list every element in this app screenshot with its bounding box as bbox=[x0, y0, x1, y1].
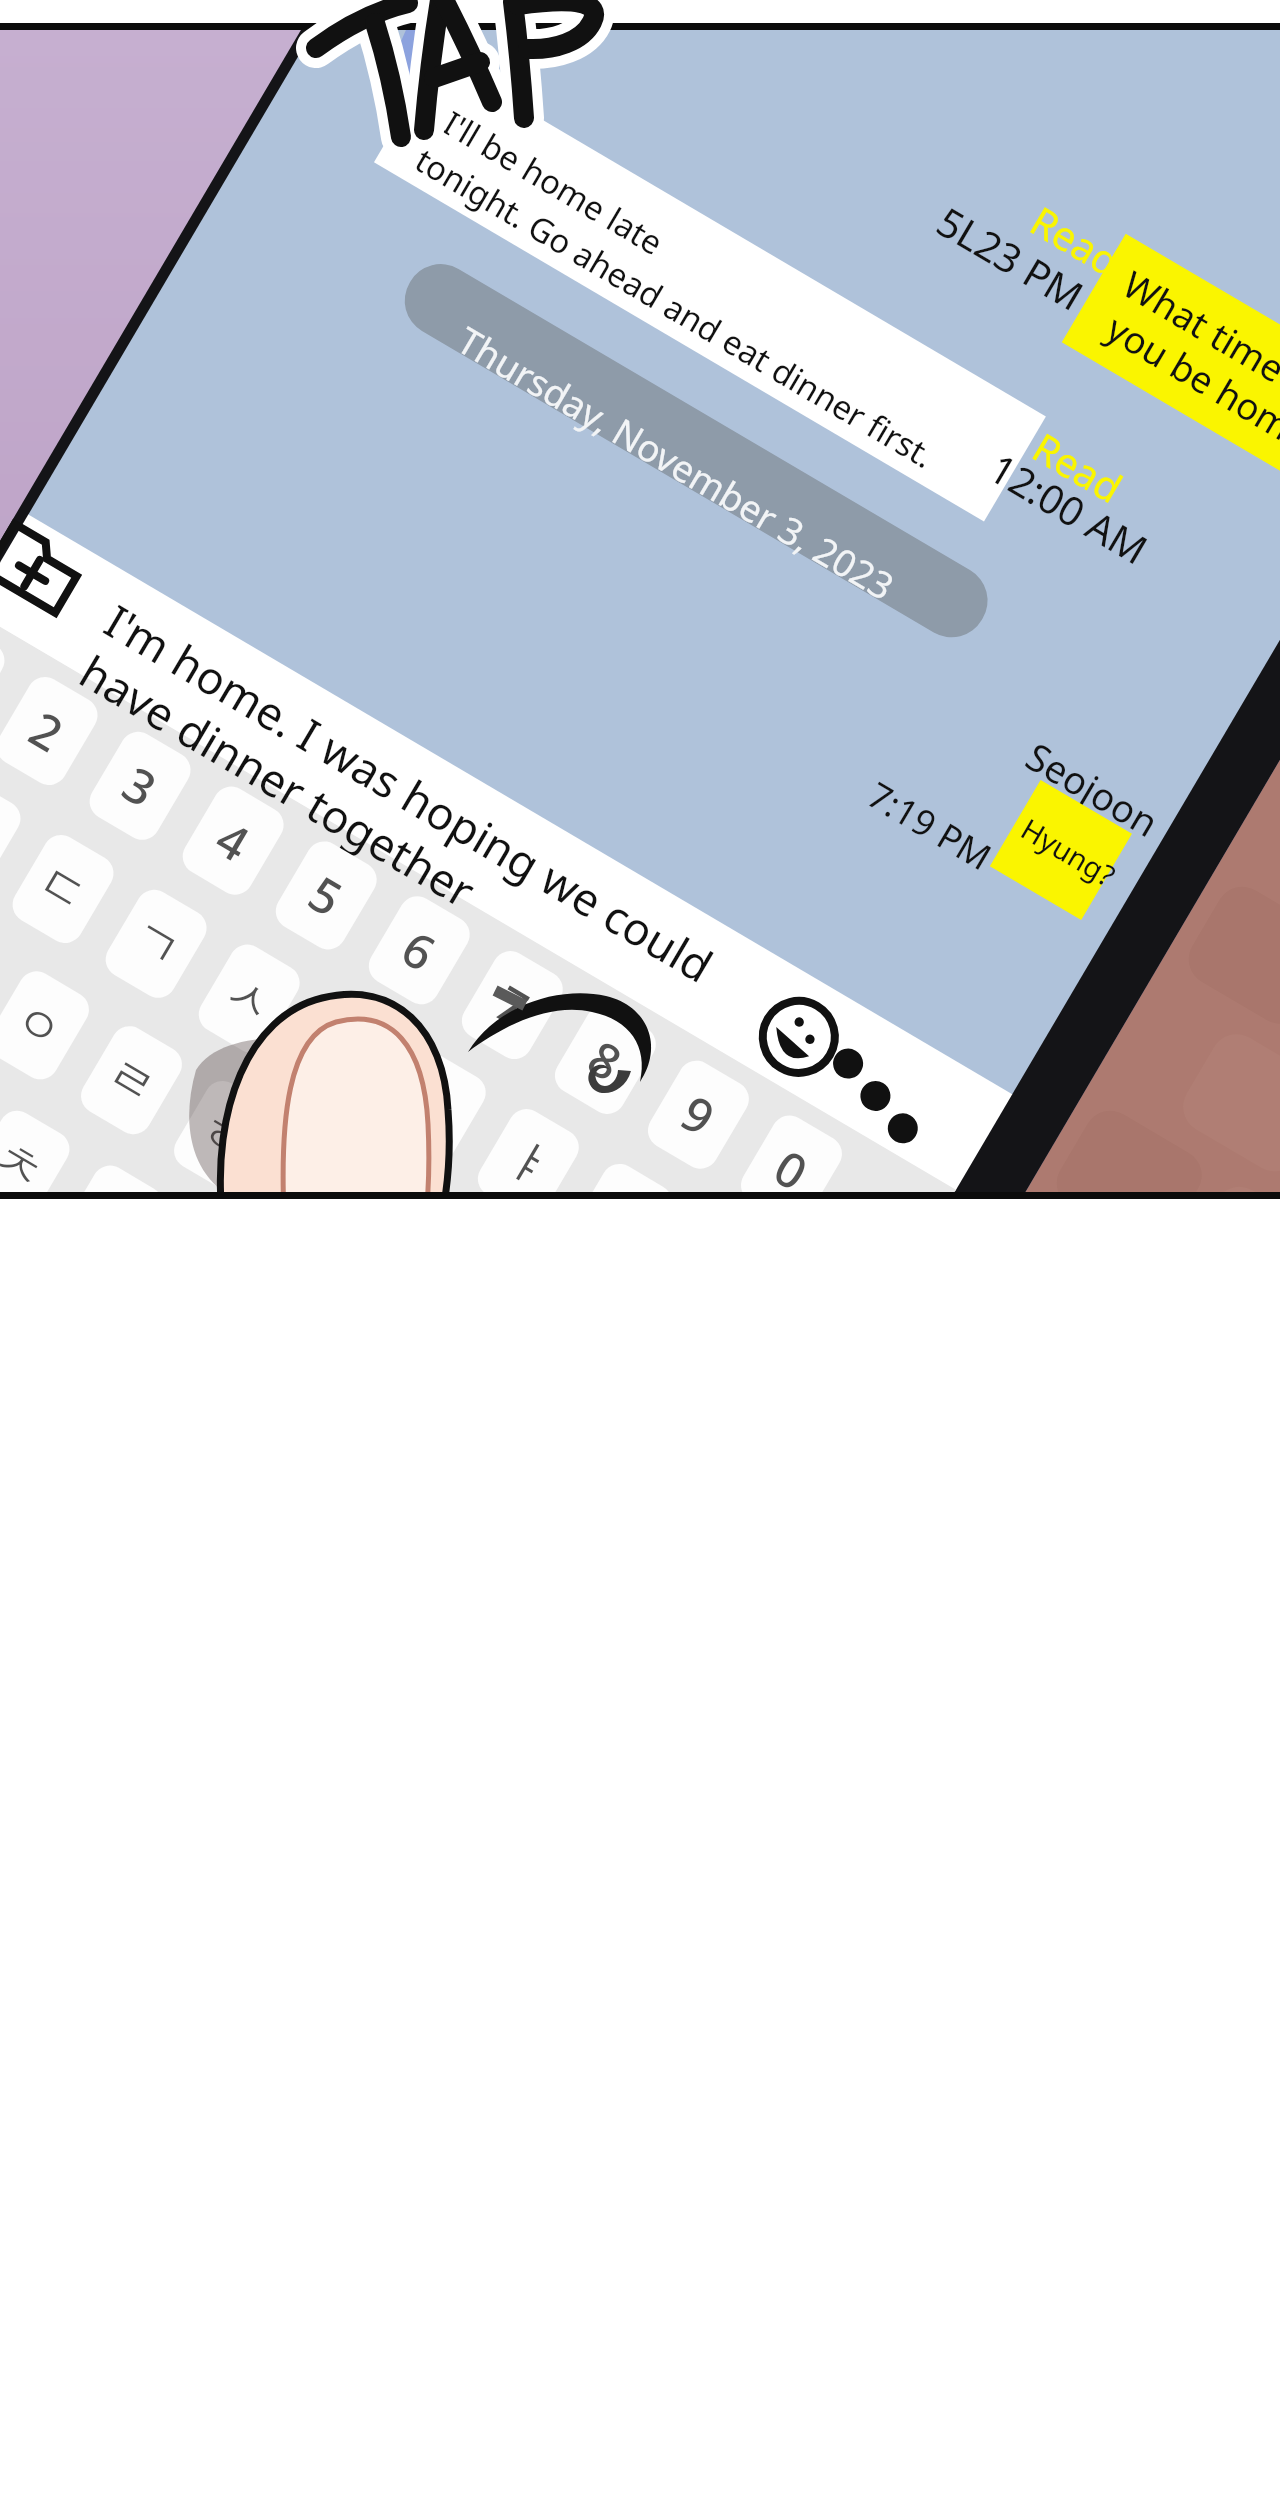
button[interactable]: Keyboard bbox=[0, 620, 960, 1192]
button[interactable]: Attach file bbox=[0, 520, 88, 616]
button[interactable]: Emoji bbox=[744, 990, 852, 1098]
button[interactable]: Message input: I'm home. I was hoping we… bbox=[96, 560, 936, 960]
button[interactable]: More options bbox=[836, 1046, 940, 1138]
button[interactable]: Sent message: Hyung? bbox=[980, 770, 1110, 890]
button[interactable]: Comic panel: tapping a chat app on a pho… bbox=[0, 0, 1280, 2500]
button[interactable]: Message: I'll be home late tonight. Go a… bbox=[372, 40, 1062, 510]
button[interactable]: Sent message: What time will you be home… bbox=[1060, 215, 1280, 415]
